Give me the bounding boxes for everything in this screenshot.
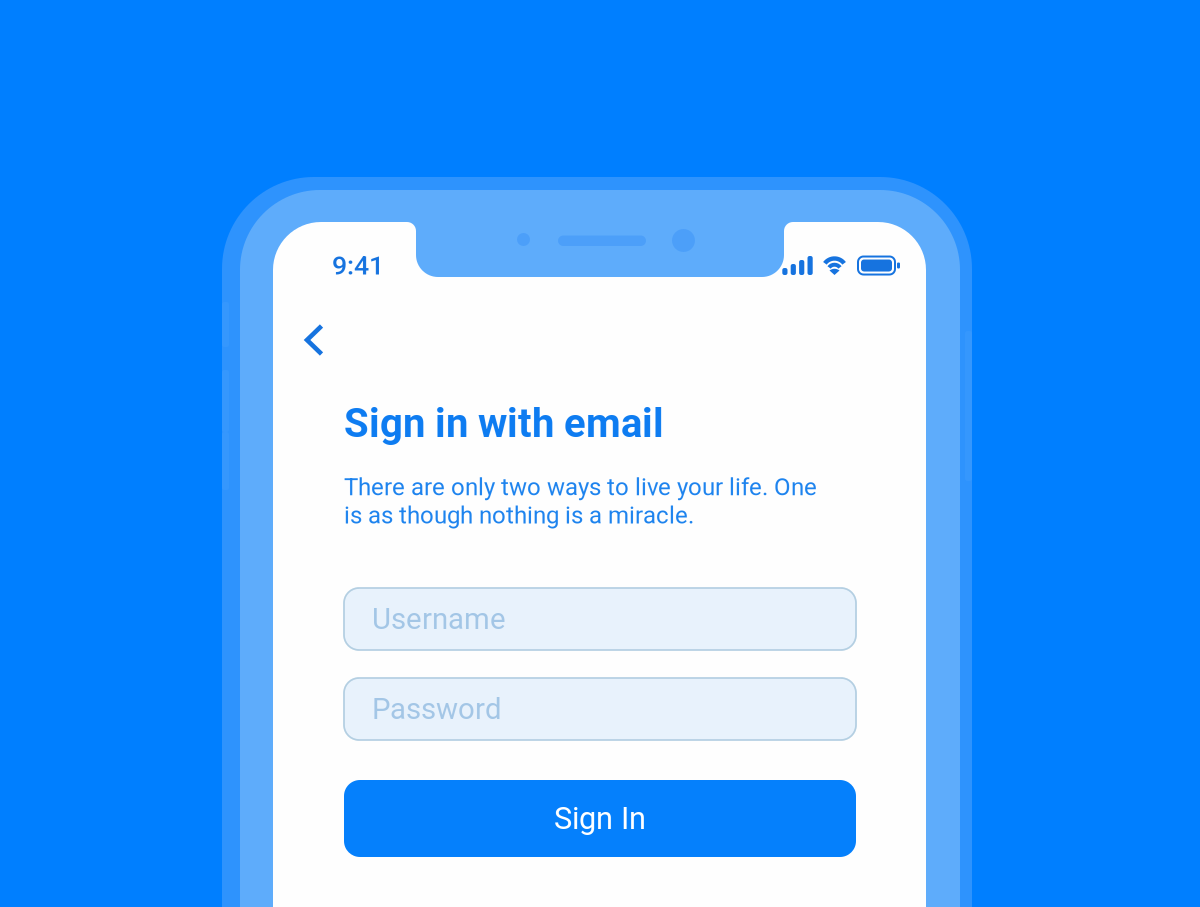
staticText: 9:41 bbox=[332, 250, 384, 281]
staticText: Sign in with email bbox=[344, 400, 664, 447]
staticText: Username bbox=[372, 602, 506, 636]
staticText: There are only two ways to live your lif… bbox=[344, 473, 817, 529]
staticText: Sign In bbox=[554, 800, 646, 836]
button[interactable]: Back bbox=[285, 306, 343, 374]
staticText: Password bbox=[372, 692, 502, 726]
button[interactable]: Sign In bbox=[344, 780, 856, 857]
